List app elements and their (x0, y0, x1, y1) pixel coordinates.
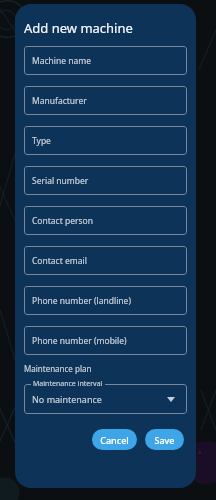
staticText: Cancel (100, 434, 129, 446)
staticText: Maintenance interval (33, 379, 103, 389)
staticText: Maintenance plan (24, 363, 92, 374)
button[interactable]: Cancel (92, 429, 137, 450)
staticText: Type (32, 135, 51, 147)
staticText: Phone number (landline) (32, 295, 131, 307)
staticText: Save (154, 434, 175, 446)
staticText: Phone number (mobile) (32, 335, 127, 347)
button[interactable]: Type (24, 126, 187, 155)
staticText: Contact email (32, 255, 87, 267)
button[interactable] (24, 384, 187, 414)
button[interactable]: Open maintenance interval dropdown (165, 393, 177, 405)
button[interactable]: Phone number (mobile) (24, 326, 187, 355)
button[interactable]: Contact email (24, 246, 187, 275)
staticText: No maintenance (32, 393, 102, 405)
button[interactable]: Save (145, 429, 184, 450)
button[interactable]: Manufacturer (24, 86, 187, 115)
button[interactable]: Serial number (24, 166, 187, 195)
button[interactable]: Contact person (24, 206, 187, 235)
staticText: Contact person (32, 215, 93, 227)
staticText: Manufacturer (32, 95, 87, 107)
staticText: Machine name (32, 55, 92, 67)
button[interactable]: Machine name (24, 46, 187, 75)
button[interactable]: Phone number (landline) (24, 286, 187, 315)
staticText: Serial number (32, 175, 89, 187)
staticText: Add new machine (24, 19, 133, 37)
